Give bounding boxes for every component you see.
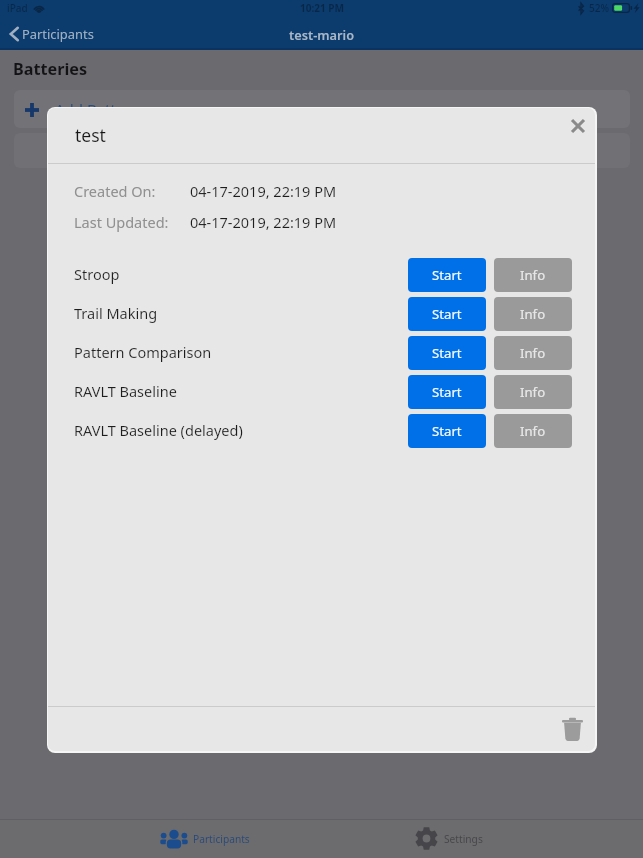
staticText: iPad <box>7 1 28 15</box>
button[interactable]: Start <box>408 375 486 409</box>
button[interactable]: Info <box>494 258 572 292</box>
staticText: 10:21 PM <box>300 1 344 15</box>
staticText: 52% <box>589 1 609 15</box>
button[interactable]: Start <box>408 336 486 370</box>
staticText: Participants <box>22 25 94 43</box>
button[interactable]: Start <box>408 414 486 448</box>
staticText: Info <box>520 266 546 284</box>
button[interactable]: Info <box>494 375 572 409</box>
button[interactable]: Settings <box>410 823 488 854</box>
button[interactable]: Battery test <box>14 133 630 168</box>
staticText: Created On: <box>74 181 156 201</box>
button[interactable]: Close <box>562 110 593 141</box>
staticText: 04-17-2019, 22:19 PM <box>190 212 337 232</box>
staticText: Batteries <box>13 58 88 80</box>
button[interactable]: Add Battery <box>14 90 630 128</box>
staticText: Start <box>432 305 462 323</box>
button[interactable]: Start <box>408 297 486 331</box>
staticText: Info <box>520 344 546 362</box>
button[interactable]: Participants <box>155 825 255 853</box>
staticText: Start <box>432 344 462 362</box>
button[interactable]: Delete <box>556 713 588 745</box>
staticText: RAVLT Baseline <box>74 381 177 401</box>
staticText: test <box>75 123 106 147</box>
staticText: Start <box>432 383 462 401</box>
staticText: Trail Making <box>74 303 158 323</box>
staticText: Info <box>520 422 546 440</box>
staticText: Pattern Comparison <box>74 342 212 362</box>
button[interactable]: Participants <box>0 22 100 46</box>
staticText: Stroop <box>74 264 120 284</box>
staticText: Add Battery <box>55 99 139 119</box>
button[interactable]: Info <box>494 297 572 331</box>
button[interactable]: Start <box>408 258 486 292</box>
button[interactable]: Info <box>494 414 572 448</box>
button[interactable]: Info <box>494 336 572 370</box>
staticText: Participants <box>193 832 250 846</box>
staticText: RAVLT Baseline (delayed) <box>74 420 243 440</box>
staticText: Start <box>432 422 462 440</box>
staticText: Info <box>520 305 546 323</box>
staticText: test-mario <box>289 26 355 43</box>
staticText: Settings <box>444 832 483 846</box>
staticText: Last Updated: <box>74 212 169 232</box>
staticText: Info <box>520 383 546 401</box>
staticText: Start <box>432 266 462 284</box>
staticText: 04-17-2019, 22:19 PM <box>190 181 337 201</box>
